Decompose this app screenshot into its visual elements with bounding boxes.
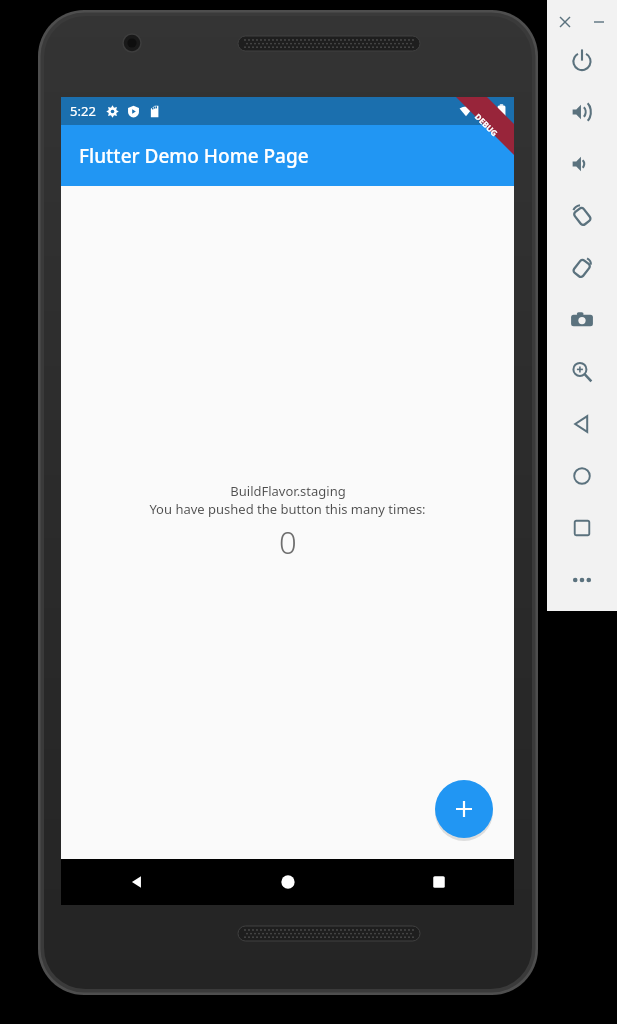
staticText: 0 [279, 521, 297, 563]
staticText: BuildFlavor.staging [230, 482, 346, 500]
button[interactable]: Power [558, 36, 606, 84]
staticText: Flutter Demo Home Page [79, 143, 309, 169]
button[interactable]: Increment [435, 780, 493, 838]
button[interactable]: Home [558, 452, 606, 500]
button[interactable]: More options [558, 556, 606, 604]
button[interactable]: Volume down [558, 140, 606, 188]
staticText: DEBUG [473, 111, 500, 139]
button[interactable]: Zoom [558, 348, 606, 396]
button[interactable]: Recents [363, 859, 514, 905]
staticText: You have pushed the button this many tim… [149, 500, 426, 518]
button[interactable]: Screenshot [558, 296, 606, 344]
button[interactable]: Minimize [589, 12, 609, 32]
button[interactable]: Overview [558, 504, 606, 552]
button[interactable]: Back [558, 400, 606, 448]
button[interactable]: Back [61, 859, 212, 905]
button[interactable]: Rotate left [558, 192, 606, 240]
staticText: 5:22 [70, 102, 96, 120]
button[interactable]: Home [212, 859, 363, 905]
button[interactable]: Volume up [558, 88, 606, 136]
button[interactable]: Close [555, 12, 575, 32]
button[interactable]: Rotate right [558, 244, 606, 292]
